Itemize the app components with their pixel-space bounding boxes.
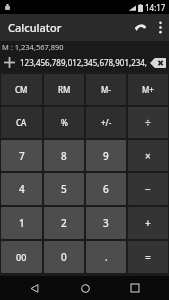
- button[interactable]: RM: [44, 74, 84, 105]
- staticText: 1: [19, 216, 25, 230]
- button[interactable]: 3: [86, 207, 126, 239]
- staticText: Calculator: [8, 20, 62, 35]
- button[interactable]: CM: [1, 74, 42, 105]
- staticText: 6: [103, 182, 109, 196]
- button[interactable]: M+: [128, 74, 168, 105]
- staticText: %: [61, 117, 68, 128]
- button[interactable]: =: [128, 241, 168, 273]
- staticText: CM: [15, 84, 28, 95]
- staticText: 0: [61, 250, 67, 264]
- button[interactable]: 6: [86, 173, 126, 205]
- button[interactable]: Undo: [129, 14, 151, 41]
- staticText: RM: [58, 84, 71, 95]
- staticText: M : 1,234,567,890: [2, 42, 64, 52]
- staticText: 5: [61, 182, 67, 196]
- button[interactable]: M-: [86, 74, 126, 105]
- button[interactable]: CA: [1, 107, 42, 138]
- button[interactable]: 9: [86, 140, 126, 171]
- button[interactable]: Recent apps: [118, 276, 152, 300]
- button[interactable]: 1: [1, 207, 42, 239]
- button[interactable]: 8: [44, 140, 84, 171]
- staticText: 123,456,789,012,345,678,901,234,567,890: [18, 57, 147, 68]
- staticText: 9: [103, 149, 109, 163]
- staticText: 14:17: [145, 2, 166, 13]
- button[interactable]: Back: [17, 276, 51, 300]
- button[interactable]: More options: [151, 14, 169, 41]
- staticText: +/-: [101, 117, 112, 128]
- button[interactable]: 00: [1, 241, 42, 273]
- staticText: CA: [16, 117, 27, 128]
- button[interactable]: +: [128, 207, 168, 239]
- button[interactable]: .: [86, 241, 126, 273]
- staticText: M-: [101, 84, 111, 95]
- staticText: 3: [103, 216, 109, 230]
- button[interactable]: +/-: [86, 107, 126, 138]
- button[interactable]: %: [44, 107, 84, 138]
- staticText: .: [105, 250, 108, 264]
- staticText: =: [145, 250, 151, 264]
- button[interactable]: 7: [1, 140, 42, 171]
- button[interactable]: 4: [1, 173, 42, 205]
- staticText: ÷: [145, 116, 151, 130]
- staticText: 2: [61, 216, 67, 230]
- staticText: −: [145, 182, 151, 196]
- staticText: ×: [145, 149, 151, 163]
- button[interactable]: 2: [44, 207, 84, 239]
- button[interactable]: Add to memory: [0, 52, 18, 72]
- button[interactable]: Backspace: [150, 57, 166, 68]
- staticText: 7: [19, 149, 25, 163]
- button[interactable]: ×: [128, 140, 168, 171]
- staticText: 00: [16, 251, 27, 263]
- button[interactable]: Home: [68, 276, 102, 300]
- button[interactable]: ÷: [128, 107, 168, 138]
- staticText: +: [145, 216, 151, 230]
- staticText: 4: [19, 182, 25, 196]
- button[interactable]: 0: [44, 241, 84, 273]
- staticText: 8: [61, 149, 67, 163]
- button[interactable]: 5: [44, 173, 84, 205]
- button[interactable]: −: [128, 173, 168, 205]
- staticText: M+: [142, 84, 154, 95]
